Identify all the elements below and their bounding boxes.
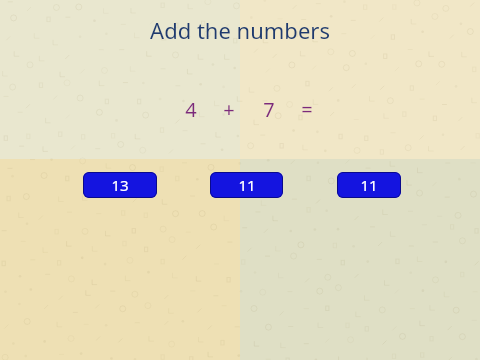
staticText: Add the numbers xyxy=(150,15,330,45)
button[interactable]: 11 xyxy=(337,172,401,198)
staticText: + xyxy=(223,96,235,122)
staticText: 4 xyxy=(185,96,197,122)
button[interactable]: 11 xyxy=(210,172,283,198)
button[interactable]: 13 xyxy=(83,172,157,198)
staticText: 11 xyxy=(238,175,256,195)
staticText: 13 xyxy=(111,175,129,195)
staticText: 11 xyxy=(360,175,378,195)
staticText: = xyxy=(301,96,313,122)
staticText: 7 xyxy=(263,96,275,122)
